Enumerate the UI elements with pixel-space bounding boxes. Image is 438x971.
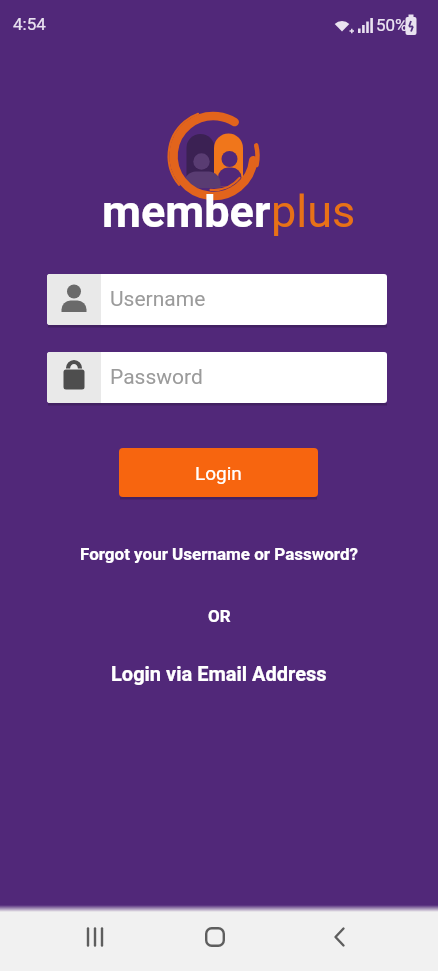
staticText: Username [110, 287, 206, 312]
staticText: 50% [376, 15, 408, 35]
staticText: OR [208, 606, 231, 626]
button[interactable]: Password [47, 352, 387, 403]
button[interactable]: Username [47, 274, 387, 325]
button[interactable]: Forgot your Username or Password? [80, 544, 358, 564]
staticText: 4:54 [13, 14, 46, 34]
button[interactable] [318, 915, 362, 959]
button[interactable] [73, 915, 117, 959]
staticText: plus [271, 185, 356, 238]
staticText: member [102, 185, 271, 238]
button[interactable] [193, 915, 237, 959]
staticText: Password [110, 365, 203, 390]
button[interactable]: Login via Email Address [111, 662, 327, 685]
staticText: Forgot your Username or Password? [80, 544, 358, 564]
staticText: Login via Email Address [111, 662, 327, 685]
button[interactable]: Login [119, 448, 318, 497]
staticText: Login [195, 462, 242, 484]
